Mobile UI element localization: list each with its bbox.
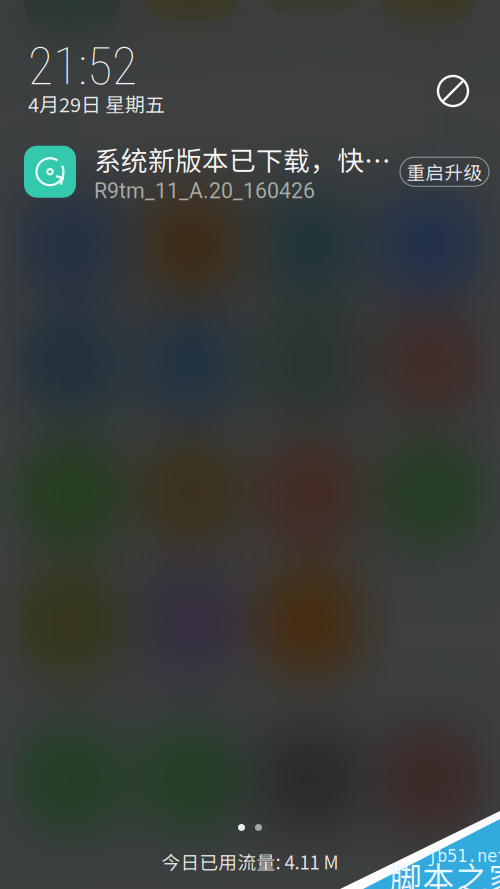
staticText: 21:52 <box>28 36 137 97</box>
button[interactable]: Do Not Disturb <box>430 68 476 114</box>
staticText: 今日已用流量: 4.11 M <box>161 848 338 875</box>
staticText: 系统新版本已下载，快… <box>94 140 391 178</box>
staticText: jb51.net <box>427 846 500 866</box>
staticText: 脚本之家 <box>389 853 500 889</box>
button[interactable]: 重启升级 <box>400 157 489 186</box>
staticText: 4月29日 星期五 <box>28 89 165 118</box>
staticText: R9tm_11_A.20_160426 <box>94 178 315 203</box>
staticText: 重启升级 <box>406 158 482 185</box>
